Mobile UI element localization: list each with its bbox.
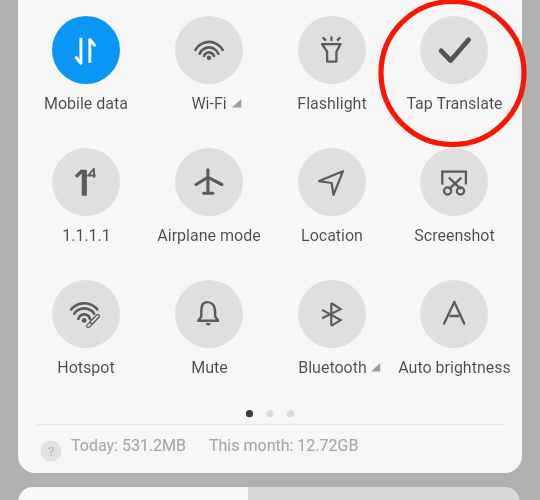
- button[interactable]: Bluetooth: [270, 272, 394, 382]
- staticText: Mute: [191, 358, 228, 377]
- staticText: Flashlight: [297, 94, 367, 113]
- button[interactable]: Hotspot: [24, 272, 148, 382]
- staticText: Auto brightness: [398, 358, 511, 377]
- staticText: This month: 12.72GB: [209, 436, 359, 455]
- button[interactable]: Auto brightness: [392, 272, 516, 382]
- staticText: Screenshot: [414, 226, 495, 245]
- button[interactable]: Mute: [147, 272, 271, 382]
- button[interactable]: Airplane mode: [147, 140, 271, 250]
- staticText: Airplane mode: [157, 226, 261, 245]
- button[interactable]: Screenshot: [392, 140, 516, 250]
- staticText: Mobile data: [44, 94, 128, 113]
- staticText: Today: 531.2MB: [71, 436, 187, 455]
- button[interactable]: Data usage help: [40, 440, 62, 462]
- staticText: Bluetooth: [298, 358, 367, 377]
- button[interactable]: Tap Translate: [392, 8, 516, 118]
- button[interactable]: Location: [270, 140, 394, 250]
- staticText: Location: [301, 226, 363, 245]
- button[interactable]: Flashlight: [270, 8, 394, 118]
- staticText: Hotspot: [57, 358, 115, 377]
- staticText: 1.1.1.1: [62, 226, 111, 245]
- button[interactable]: Mobile data: [24, 8, 148, 118]
- button[interactable]: Wi-Fi: [147, 8, 271, 118]
- button[interactable]: 1.1.1.1: [24, 140, 148, 250]
- staticText: Tap Translate: [406, 94, 503, 113]
- staticText: Wi-Fi: [191, 94, 227, 113]
- staticText: ?: [48, 444, 55, 459]
